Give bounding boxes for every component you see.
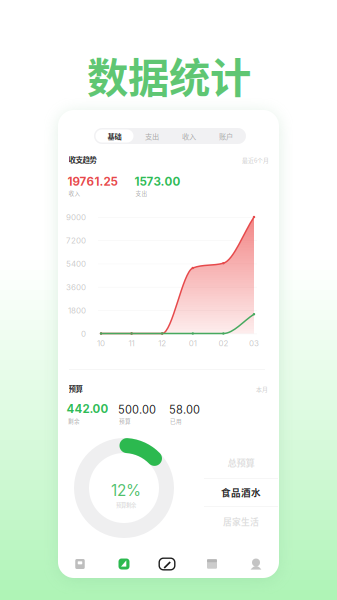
staticText: 9000 (66, 212, 86, 222)
staticText: 收支趋势 (68, 154, 96, 165)
button[interactable]: 统计 (115, 555, 133, 573)
staticText: 数据统计 (87, 45, 251, 105)
staticText: 1573.00 (134, 174, 180, 188)
staticText: 58.00 (169, 403, 200, 416)
staticText: 5400 (66, 259, 86, 269)
button[interactable]: 账户 (207, 129, 244, 142)
staticText: 500.00 (118, 403, 156, 416)
staticText: 食品酒水 (221, 485, 261, 499)
button[interactable]: 记一笔 (157, 555, 177, 573)
staticText: 0 (81, 329, 86, 339)
staticText: 收入 (182, 131, 196, 141)
staticText: 预算 (119, 417, 131, 425)
staticText: 1800 (68, 306, 86, 315)
staticText: 本月 (256, 385, 268, 393)
staticText: 预算 (68, 383, 82, 394)
staticText: 03 (249, 338, 259, 348)
staticText: 01 (189, 338, 197, 348)
staticText: 12% (111, 481, 141, 500)
staticText: 11 (129, 338, 135, 348)
staticText: 支出 (135, 189, 147, 197)
button[interactable]: 日历 (203, 555, 221, 573)
staticText: 3600 (66, 282, 86, 292)
staticText: 收入 (68, 189, 80, 197)
button[interactable]: 总预算 (204, 447, 278, 478)
button[interactable]: 我的 (247, 555, 265, 573)
button[interactable]: 食品酒水 (204, 478, 278, 506)
staticText: 总预算 (227, 456, 254, 469)
staticText: 最近6个月 (242, 156, 269, 164)
button[interactable]: 支出 (133, 129, 170, 142)
staticText: 10 (97, 338, 105, 348)
button[interactable]: 账本 (71, 555, 89, 573)
button[interactable]: 居家生活 (204, 506, 278, 537)
staticText: 剩余 (68, 417, 80, 425)
staticText: 支出 (145, 131, 159, 141)
staticText: 居家生活 (223, 515, 259, 528)
staticText: 02 (218, 338, 228, 348)
staticText: 442.00 (66, 402, 108, 416)
staticText: 7200 (66, 236, 86, 245)
button[interactable]: 收入 (170, 129, 207, 142)
staticText: 已用 (170, 417, 182, 425)
staticText: 账户 (219, 131, 233, 141)
staticText: 基础 (107, 131, 121, 141)
staticText: 12 (158, 338, 166, 348)
staticText: 19761.25 (67, 174, 117, 188)
staticText: 预算剩余 (116, 501, 136, 509)
button[interactable]: 基础 (95, 129, 133, 142)
